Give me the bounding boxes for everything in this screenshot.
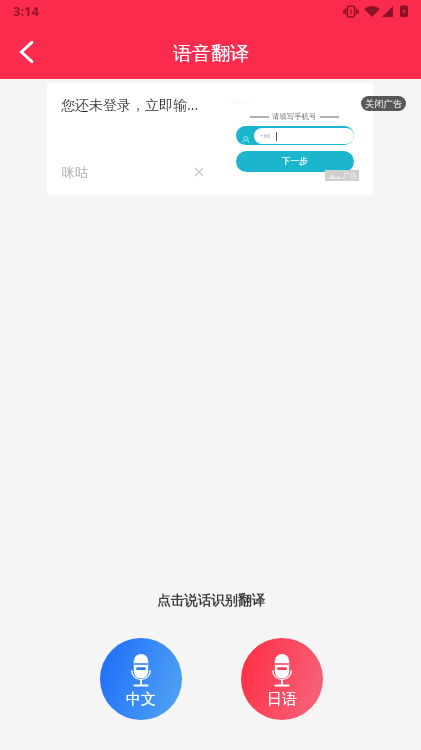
staticText: 中文	[126, 690, 156, 709]
staticText: 请填写手机号	[272, 112, 317, 121]
other: Vibrate	[343, 6, 359, 17]
other: Battery	[400, 5, 408, 17]
other: Signal	[382, 6, 393, 17]
button[interactable]: 下一步	[236, 151, 354, 172]
staticText: +86	[260, 132, 271, 140]
button[interactable]: 中文	[100, 638, 182, 720]
other: Wifi	[364, 6, 380, 17]
staticText: 您还未登录，立即输...	[61, 95, 199, 114]
button[interactable]: 您还未登录，立即输...	[47, 83, 373, 195]
staticText: 语音翻译	[173, 42, 249, 66]
staticText: 点击说话识别翻译	[157, 592, 265, 609]
button[interactable]: 关闭广告	[361, 96, 406, 111]
staticText: 3:14	[13, 2, 39, 20]
staticText: 关闭广告	[365, 98, 403, 110]
staticText: 日语	[267, 690, 297, 709]
staticText: 咪咕音乐	[230, 98, 250, 104]
staticText: 咪咕	[62, 164, 88, 180]
button[interactable]: Back	[2, 28, 50, 76]
staticText: 广告	[343, 171, 357, 180]
button[interactable]: +86	[236, 126, 354, 145]
button[interactable]: 日语	[241, 638, 323, 720]
staticText: 下一步	[282, 156, 308, 167]
